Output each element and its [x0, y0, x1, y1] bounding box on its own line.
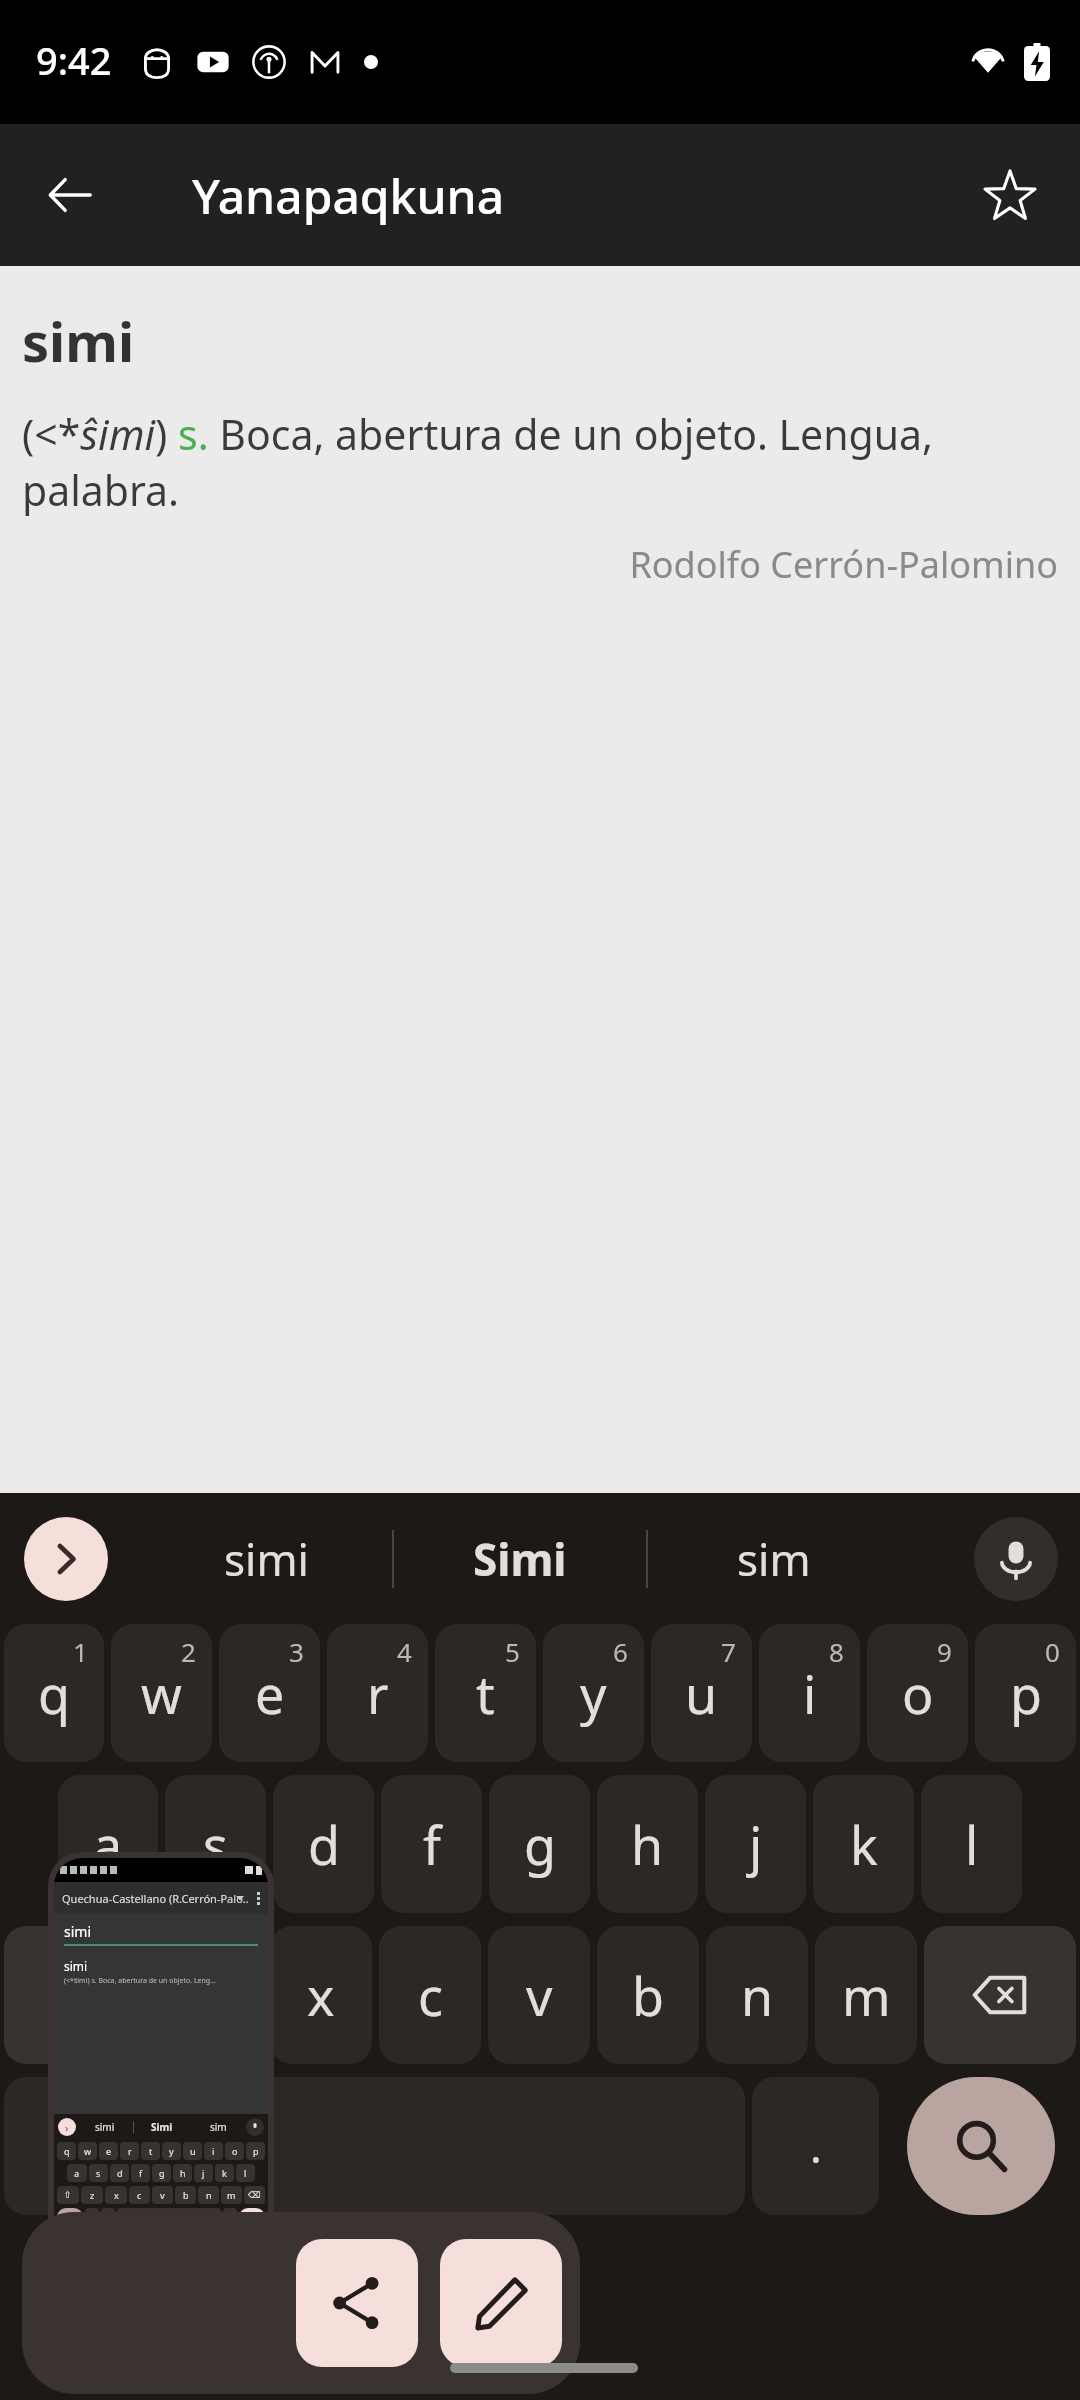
button[interactable]: Edit — [440, 2239, 562, 2367]
staticText: l — [244, 2167, 247, 2179]
button[interactable]: Simi — [394, 1493, 646, 1624]
staticText: o — [902, 1658, 934, 1729]
staticText: s — [203, 1809, 228, 1880]
staticText: u — [685, 1658, 718, 1729]
staticText: h — [180, 2167, 186, 2179]
staticText: Rodolfo Cerrón-Palomino — [22, 540, 1058, 589]
staticText: 9 — [937, 1634, 952, 1669]
button[interactable]: sim — [648, 1493, 900, 1624]
button[interactable]: r — [327, 1624, 428, 1762]
staticText: n — [741, 1960, 774, 2031]
staticText: simi — [64, 1922, 92, 1941]
staticText: o — [232, 2145, 238, 2157]
staticText: v — [160, 2189, 165, 2201]
staticText: 1 — [73, 1634, 88, 1669]
button[interactable]: d — [273, 1775, 374, 1913]
staticText: t — [476, 1658, 495, 1729]
button[interactable]: Backspace — [924, 1926, 1076, 2064]
staticText: z — [200, 1960, 225, 2031]
staticText: a — [74, 2167, 80, 2179]
staticText: l — [965, 1809, 979, 1880]
button[interactable]: Emoji — [4, 2077, 156, 2215]
staticText: Simi — [151, 2120, 173, 2134]
staticText: e — [106, 2145, 112, 2157]
staticText: sim — [737, 1529, 811, 1589]
button[interactable]: v — [488, 1926, 590, 2064]
staticText: h — [631, 1809, 664, 1880]
button[interactable]: y — [543, 1624, 644, 1762]
staticText: a — [93, 1809, 123, 1880]
staticText: w — [141, 1658, 182, 1729]
button[interactable]: h — [597, 1775, 698, 1913]
staticText: i — [212, 2145, 215, 2157]
staticText: p — [1010, 1658, 1042, 1729]
staticText: 2 — [181, 1634, 196, 1669]
staticText: k — [850, 1809, 878, 1880]
button[interactable]: m — [815, 1926, 917, 2064]
staticText: simi — [95, 2120, 115, 2134]
button[interactable]: l — [921, 1775, 1022, 1913]
staticText: Simi — [473, 1529, 567, 1589]
button[interactable]: k — [813, 1775, 914, 1913]
staticText: e — [255, 1658, 285, 1729]
staticText: f — [423, 1809, 441, 1880]
button[interactable]: p — [975, 1624, 1076, 1762]
button[interactable]: i — [759, 1624, 860, 1762]
button[interactable]: Picture in picture window — [48, 1852, 274, 2252]
staticText: p — [253, 2145, 259, 2157]
staticText: 3 — [289, 1634, 304, 1669]
staticText: › — [65, 2120, 69, 2135]
staticText: f — [139, 2167, 143, 2179]
button[interactable]: More suggestions — [24, 1517, 108, 1601]
button[interactable]: b — [597, 1926, 699, 2064]
button[interactable]: n — [706, 1926, 808, 2064]
button[interactable]: Share — [296, 2239, 418, 2367]
staticText: x — [307, 1960, 335, 2031]
staticText: y — [580, 1658, 607, 1729]
button[interactable]: t — [435, 1624, 536, 1762]
staticText: k — [222, 2167, 227, 2179]
staticText: 6 — [613, 1634, 628, 1669]
staticText: i — [803, 1658, 817, 1729]
button[interactable]: u — [651, 1624, 752, 1762]
button[interactable]: Back — [22, 147, 118, 243]
staticText: d — [308, 1809, 340, 1880]
button[interactable]: Voice input — [974, 1517, 1058, 1601]
button[interactable]: simi — [140, 1493, 392, 1624]
button[interactable]: z — [162, 1926, 263, 2064]
button[interactable]: g — [489, 1775, 590, 1913]
staticText: r — [367, 1658, 389, 1729]
button[interactable]: a — [58, 1775, 158, 1913]
staticText: ⌫ — [248, 2190, 261, 2200]
staticText: simi — [22, 304, 135, 378]
button[interactable]: Favourite — [962, 147, 1058, 243]
button[interactable]: e — [219, 1624, 320, 1762]
staticText: q — [38, 1658, 70, 1729]
button[interactable]: Space — [163, 2077, 745, 2215]
button[interactable]: x — [270, 1926, 372, 2064]
staticText: Quechua-Castellano (R.Cerrón-Palo.. — [62, 1891, 249, 1906]
staticText: c — [418, 1960, 443, 2031]
staticText: b — [183, 2189, 189, 2201]
button[interactable]: j — [705, 1775, 806, 1913]
staticText: q — [64, 2145, 70, 2157]
button[interactable]: o — [867, 1624, 968, 1762]
button[interactable]: . — [752, 2077, 879, 2215]
button[interactable]: Shift — [4, 1926, 155, 2064]
staticText: g — [159, 2167, 165, 2179]
staticText: simi — [224, 1529, 309, 1589]
button[interactable]: c — [379, 1926, 481, 2064]
staticText: j — [202, 2167, 205, 2179]
staticText: (<*ŝimi) s. Boca, abertura de un objeto.… — [22, 406, 1058, 518]
button[interactable]: f — [381, 1775, 482, 1913]
button[interactable]: w — [111, 1624, 212, 1762]
button[interactable]: s — [165, 1775, 266, 1913]
staticText: 0 — [1045, 1634, 1060, 1669]
staticText: 4 — [397, 1634, 412, 1669]
button[interactable]: Search — [907, 2077, 1055, 2215]
button[interactable]: q — [4, 1624, 104, 1762]
staticText: z — [90, 2189, 95, 2201]
